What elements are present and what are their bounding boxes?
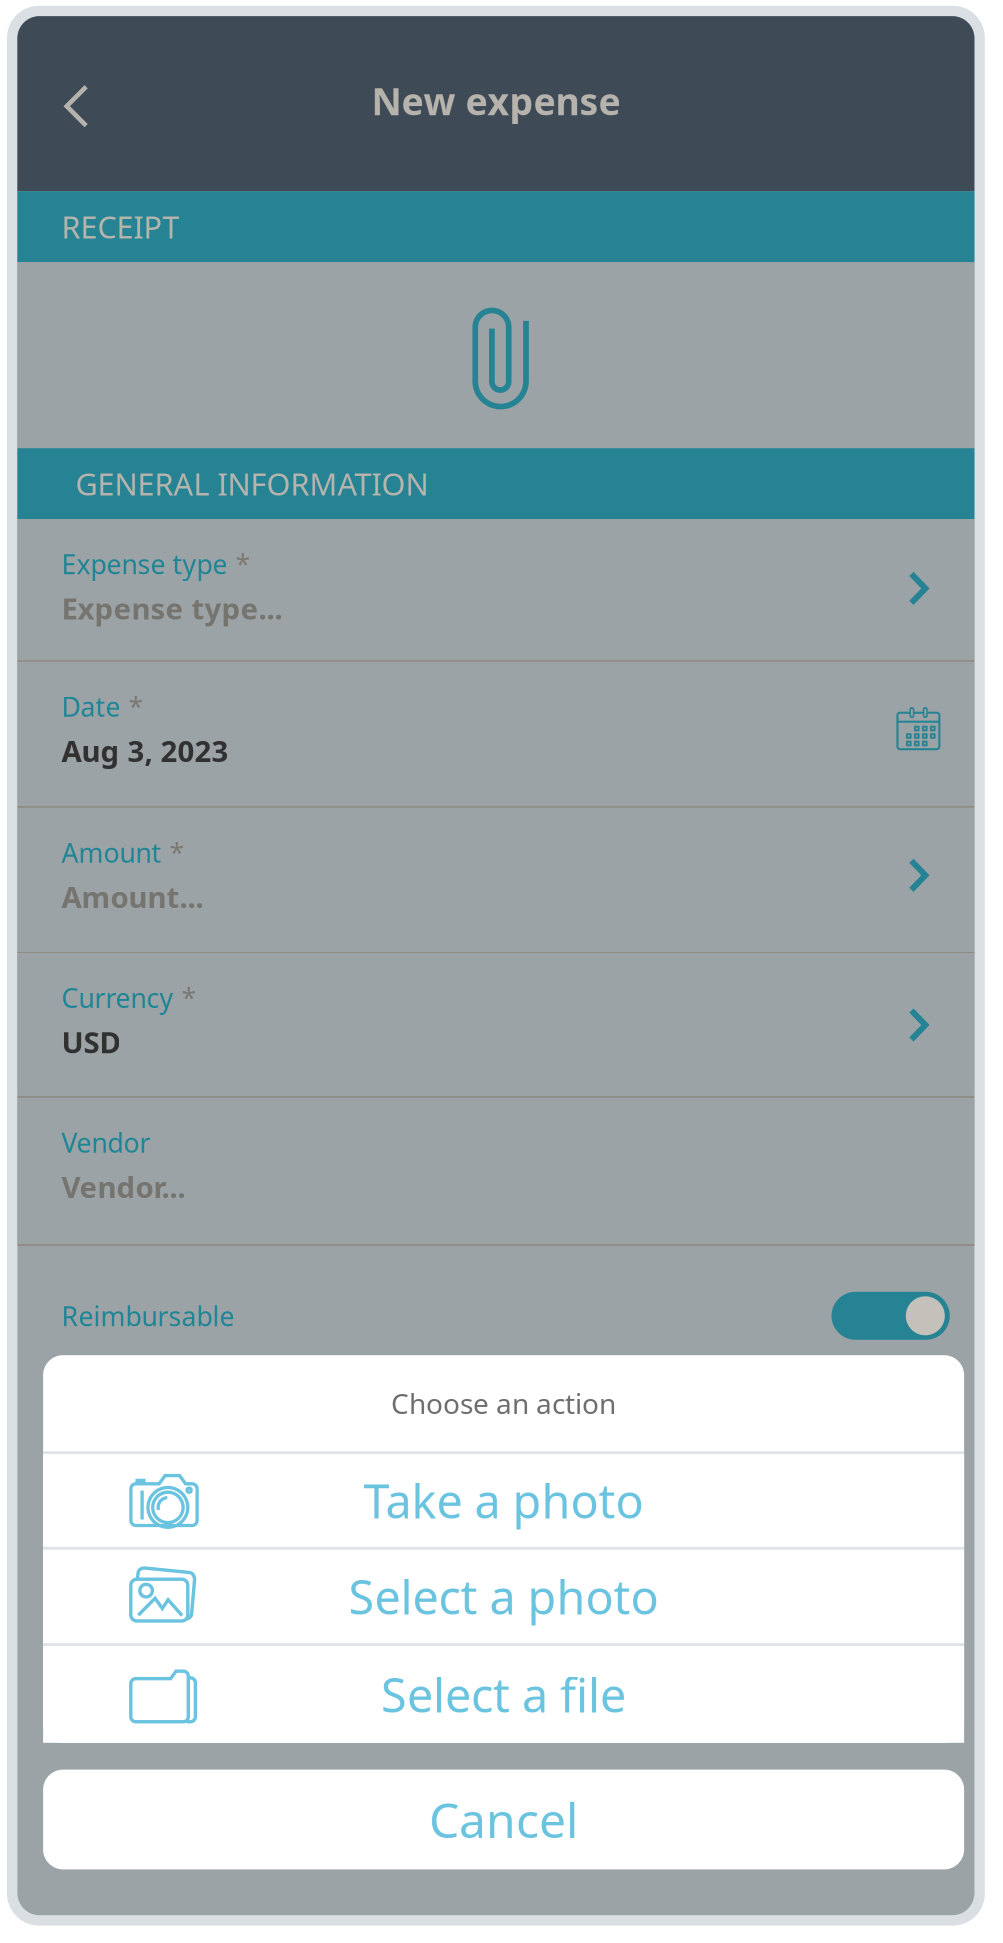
staticText: Reimbursable — [61, 1298, 234, 1333]
staticText: GENERAL INFORMATION — [75, 463, 428, 504]
staticText: Aug 3, 2023 — [61, 731, 228, 770]
staticText: * — [169, 835, 184, 870]
staticText: Expense type... — [61, 589, 282, 628]
staticText: Select a photo — [349, 1565, 659, 1627]
staticText: Cancel — [429, 1788, 578, 1851]
button[interactable]: Back — [17, 53, 123, 154]
staticText: * — [235, 546, 250, 582]
staticText: Select a file — [381, 1663, 626, 1725]
button[interactable]: Take a photo — [43, 1454, 964, 1547]
button[interactable]: Vendor — [17, 1098, 974, 1246]
button[interactable]: Expense type — [17, 519, 974, 662]
button[interactable]: Amount — [17, 808, 974, 954]
button[interactable]: Attach receipt — [17, 262, 974, 448]
staticText: Choose an action — [391, 1385, 616, 1422]
staticText: USD — [61, 1022, 120, 1061]
staticText: Vendor — [61, 1125, 150, 1160]
staticText: Currency — [61, 980, 173, 1015]
staticText: RECEIPT — [61, 206, 179, 247]
staticText: Take a photo — [364, 1469, 644, 1531]
button[interactable]: Select a file — [43, 1646, 964, 1743]
staticText: Expense type — [61, 546, 227, 582]
staticText: Amount... — [61, 877, 203, 916]
staticText: * — [128, 689, 143, 724]
button[interactable]: Currency — [17, 954, 974, 1098]
staticText: Date — [61, 689, 120, 724]
button[interactable]: Select a photo — [43, 1550, 964, 1643]
button[interactable]: Date — [17, 662, 974, 808]
staticText: Vendor... — [61, 1167, 185, 1206]
staticText: New expense — [371, 76, 620, 125]
staticText: Amount — [61, 835, 161, 870]
button[interactable]: Reimbursable — [17, 1246, 974, 1386]
button[interactable]: Cancel — [43, 1770, 964, 1869]
staticText: * — [181, 980, 196, 1015]
